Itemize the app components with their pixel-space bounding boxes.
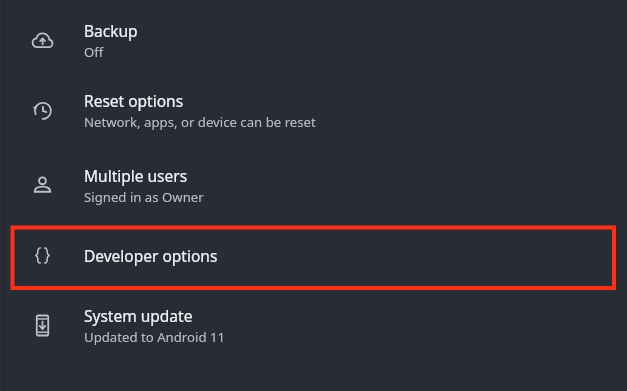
button[interactable]: Multiple users bbox=[0, 148, 627, 223]
other: System update bbox=[0, 287, 84, 363]
button[interactable]: System update bbox=[0, 287, 627, 363]
other: Backup bbox=[0, 7, 84, 73]
other: Multiple users bbox=[0, 148, 84, 223]
staticText: System update bbox=[84, 305, 193, 326]
staticText: Off bbox=[84, 43, 104, 61]
staticText: Backup bbox=[84, 20, 138, 41]
staticText: Reset options bbox=[84, 90, 184, 111]
staticText: Signed in as Owner bbox=[84, 188, 204, 206]
button[interactable]: Reset options bbox=[0, 73, 627, 148]
staticText: Developer options bbox=[84, 245, 218, 266]
other: Reset options bbox=[0, 73, 84, 148]
staticText: Network, apps, or device can be reset bbox=[84, 113, 316, 131]
staticText: Multiple users bbox=[84, 165, 188, 186]
other: Developer options bbox=[0, 223, 84, 287]
staticText: Updated to Android 11 bbox=[84, 328, 226, 346]
button[interactable]: Backup bbox=[0, 7, 627, 73]
button[interactable]: Developer options bbox=[0, 223, 627, 287]
